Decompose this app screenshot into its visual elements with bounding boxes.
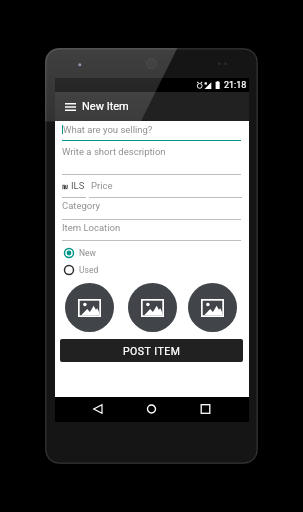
button[interactable]: Add photo [128, 283, 177, 332]
staticText: What are you selling? [63, 124, 153, 135]
staticText: ILS [71, 180, 85, 191]
staticText: Category [62, 200, 101, 211]
button[interactable]: Used [62, 261, 108, 277]
button[interactable]: Add photo [188, 283, 237, 332]
staticText: 21:18 [224, 80, 247, 91]
staticText: ₪ [62, 182, 69, 191]
staticText: New [79, 248, 96, 258]
button[interactable]: Home [139, 397, 164, 422]
button[interactable]: Open navigation menu [60, 97, 80, 117]
button[interactable]: Add photo [65, 283, 114, 332]
staticText: Write a short description [62, 146, 166, 157]
staticText: New Item [82, 100, 129, 113]
staticText: Used [79, 265, 99, 275]
button[interactable]: New [62, 244, 108, 260]
staticText: Price [91, 180, 113, 191]
staticText: Item Location [62, 222, 121, 233]
button[interactable]: Back [85, 397, 110, 422]
staticText: POST ITEM [123, 345, 181, 357]
button[interactable]: Recent apps [193, 397, 218, 422]
button[interactable]: POST ITEM [60, 339, 243, 362]
